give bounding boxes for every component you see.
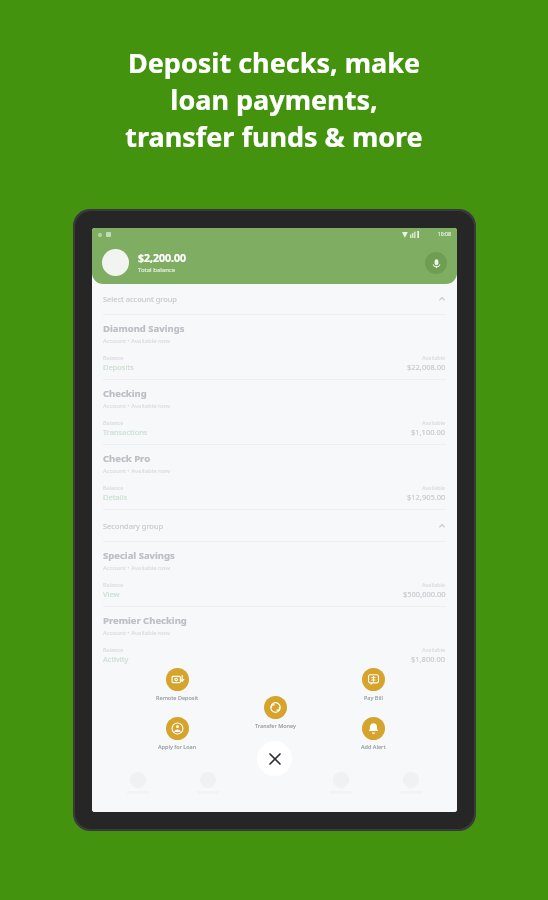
staticText: $1,800.00 — [411, 654, 446, 664]
staticText: Balance — [103, 419, 124, 426]
staticText: Details — [103, 492, 128, 502]
button[interactable]: Home — [114, 772, 162, 794]
staticText: Balance — [103, 484, 124, 491]
button[interactable]: Special Savings — [103, 549, 446, 599]
staticText: Account • Available now — [103, 629, 171, 637]
staticText: Account • Available now — [103, 564, 171, 572]
staticText: Available — [422, 354, 446, 361]
staticText: Premier Checking — [103, 614, 187, 627]
staticText: $2,200.00 — [138, 251, 186, 265]
staticText: Select account group — [103, 294, 177, 304]
staticText: Activity — [103, 654, 129, 664]
staticText: Remote Deposit — [156, 694, 199, 701]
button[interactable]: Transfer Money — [242, 696, 308, 729]
button[interactable]: Voice assistant — [425, 252, 447, 274]
staticText: Balance — [103, 354, 124, 361]
staticText: Deposit checks, make loan payments, tran… — [20, 44, 528, 155]
button[interactable]: Apply for Loan — [144, 717, 210, 750]
staticText: Transfer Money — [255, 722, 296, 729]
button[interactable]: Check Pro — [103, 452, 446, 502]
staticText: Available — [422, 581, 446, 588]
button[interactable]: Checking — [103, 387, 446, 437]
staticText: Add Alert — [361, 743, 386, 750]
staticText: Account • Available now — [103, 467, 171, 475]
button[interactable]: Diamond Savings — [103, 322, 446, 372]
button[interactable]: More — [387, 772, 435, 794]
button[interactable]: Secondary group — [103, 517, 446, 534]
staticText: Diamond Savings — [103, 322, 185, 335]
staticText: Available — [422, 484, 446, 491]
staticText: Available — [422, 646, 446, 653]
staticText: View — [103, 589, 120, 599]
staticText: $12,905.00 — [407, 492, 446, 502]
staticText: $500,000.00 — [403, 589, 446, 599]
button[interactable]: Move — [317, 772, 365, 794]
staticText: Account • Available now — [103, 337, 171, 345]
staticText: $22,008.00 — [407, 362, 446, 372]
button[interactable]: Accounts — [184, 772, 232, 794]
button[interactable]: Remote Deposit — [144, 668, 210, 701]
staticText: Special Savings — [103, 549, 175, 562]
staticText: Secondary group — [103, 521, 164, 531]
button[interactable]: Pay Bill — [340, 668, 406, 701]
staticText: Apply for Loan — [158, 743, 197, 750]
button[interactable]: Close menu — [257, 741, 292, 776]
staticText: Transactions — [103, 427, 148, 437]
staticText: $1,100.00 — [411, 427, 446, 437]
staticText: Balance — [103, 646, 124, 653]
button[interactable]: Add Alert — [340, 717, 406, 750]
staticText: 10:08 — [438, 231, 451, 238]
button[interactable]: Premier Checking — [103, 614, 446, 664]
staticText: Check Pro — [103, 452, 151, 465]
staticText: Checking — [103, 387, 147, 400]
staticText: Total balance — [138, 266, 176, 274]
staticText: Account • Available now — [103, 402, 171, 410]
staticText: Pay Bill — [364, 694, 383, 701]
staticText: Deposits — [103, 362, 134, 372]
button[interactable]: Select account group — [103, 290, 446, 307]
staticText: Balance — [103, 581, 124, 588]
staticText: Available — [422, 419, 446, 426]
